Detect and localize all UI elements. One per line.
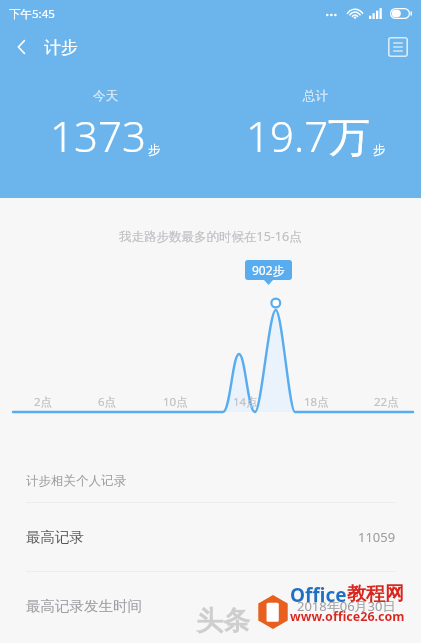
staticText: 6点 bbox=[98, 394, 117, 410]
staticText: 14点 bbox=[233, 394, 258, 410]
button[interactable]: 最高记录发生时间 bbox=[0, 572, 421, 640]
button[interactable]: 最高记录 bbox=[0, 503, 421, 571]
staticText: 11059 bbox=[358, 528, 396, 546]
button[interactable]: Back bbox=[0, 25, 44, 69]
staticText: 1373 bbox=[50, 107, 146, 164]
staticText: 下午5:45 bbox=[9, 6, 55, 22]
staticText: 计步 bbox=[44, 37, 78, 58]
staticText: 19.7万 bbox=[246, 107, 371, 164]
staticText: 总计 bbox=[303, 88, 328, 104]
staticText: Office bbox=[290, 582, 347, 608]
staticText: 最高记录发生时间 bbox=[26, 597, 142, 615]
staticText: 今天 bbox=[93, 88, 118, 104]
staticText: 我走路步数最多的时候在15-16点 bbox=[119, 228, 302, 245]
button[interactable]: Step records bbox=[375, 25, 421, 69]
staticText: 教程网 bbox=[347, 582, 404, 606]
staticText: 10点 bbox=[163, 394, 188, 410]
staticText: 最高记录 bbox=[26, 528, 84, 546]
staticText: 22点 bbox=[374, 394, 399, 410]
staticText: 2018年06月30日 bbox=[297, 597, 396, 615]
staticText: 步 bbox=[148, 142, 161, 158]
staticText: 2点 bbox=[34, 394, 53, 410]
staticText: 902步 bbox=[252, 262, 285, 278]
staticText: 头条 bbox=[196, 604, 250, 638]
staticText: www.office26.com bbox=[290, 608, 405, 625]
staticText: 18点 bbox=[304, 394, 329, 410]
staticText: 步 bbox=[373, 142, 386, 158]
staticText: 计步相关个人记录 bbox=[26, 473, 126, 489]
